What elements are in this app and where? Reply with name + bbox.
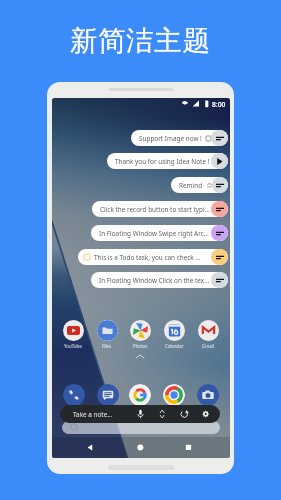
staticText: Remind	[179, 181, 203, 190]
staticText: YouTube	[64, 343, 82, 349]
staticText: Click the record button to start typi…	[100, 205, 210, 214]
button[interactable]: Remind	[171, 177, 228, 193]
button[interactable]: Phone	[63, 384, 85, 406]
staticText: Gmail	[202, 343, 215, 349]
button[interactable]: In Floating Window Swipe right Arc…	[91, 225, 228, 241]
staticText: 新简洁主题	[70, 24, 211, 59]
button[interactable]: Thank you for using Idea Note !	[107, 153, 228, 169]
staticText: This is a Todo task, you can check …	[94, 253, 201, 262]
button[interactable]: Files	[93, 320, 121, 349]
staticText: Photos	[133, 343, 148, 349]
staticText: In Floating Window Click on the tex…	[99, 276, 210, 285]
button[interactable]: Calendar	[160, 320, 188, 349]
staticText: Thank you for using Idea Note !	[115, 157, 210, 166]
button[interactable]: Chrome	[163, 384, 185, 406]
button[interactable]: In Floating Window Click on the tex…	[91, 272, 228, 288]
button[interactable]: Google Search	[129, 384, 151, 406]
button[interactable]: Photos	[126, 320, 154, 349]
staticText: Support Image now !	[139, 134, 202, 143]
staticText: In Floating Window Swipe right Arc…	[99, 229, 209, 238]
staticText: Files	[102, 343, 112, 349]
button[interactable]: Take a note…	[60, 405, 220, 423]
button[interactable]: Messages	[97, 384, 119, 406]
staticText: 8:00	[212, 100, 226, 109]
button[interactable]: Gmail	[194, 320, 222, 349]
button[interactable]: Google Search	[62, 421, 220, 434]
button[interactable]: Camera	[197, 384, 219, 406]
staticText: Take a note…	[73, 410, 113, 419]
button[interactable]: YouTube	[59, 320, 87, 349]
button[interactable]: Click the record button to start typi…	[92, 201, 228, 217]
staticText: Calendar	[165, 343, 184, 349]
button[interactable]: This is a Todo task, you can check …	[78, 249, 228, 265]
button[interactable]: Support Image now !	[131, 130, 228, 146]
